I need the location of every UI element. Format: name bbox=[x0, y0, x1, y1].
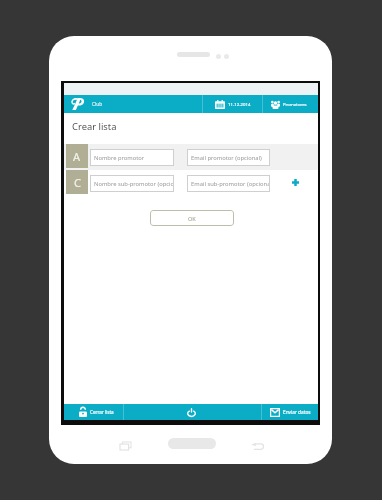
button[interactable]: C bbox=[66, 170, 88, 194]
staticText: Email promotor (opcional) bbox=[191, 154, 262, 162]
staticText: Crear lista bbox=[72, 120, 117, 133]
staticText: Promotores bbox=[283, 101, 307, 107]
button[interactable]: Club bbox=[64, 95, 202, 113]
button[interactable]: Recent apps bbox=[114, 434, 137, 457]
staticText: Enviar datos bbox=[283, 409, 311, 415]
staticText: C bbox=[74, 175, 81, 190]
button[interactable]: Add sub-promoter bbox=[289, 176, 302, 189]
staticText: OK bbox=[188, 215, 196, 222]
button[interactable]: Cerrar lista bbox=[64, 404, 123, 420]
button[interactable]: Email sub-promotor (opcional) bbox=[187, 175, 270, 192]
button[interactable]: Promotores bbox=[263, 95, 318, 113]
button[interactable]: Nombre promotor bbox=[90, 149, 174, 166]
staticText: 11-12-2014 bbox=[228, 101, 251, 107]
button[interactable]: Enviar datos bbox=[262, 404, 318, 420]
button[interactable]: Home bbox=[168, 438, 216, 449]
button[interactable]: OK bbox=[150, 210, 234, 226]
staticText: Nombre promotor bbox=[94, 154, 145, 162]
button[interactable]: Nombre sub-promotor (opcional) bbox=[90, 175, 174, 192]
button[interactable]: Power bbox=[124, 404, 261, 420]
staticText: Email sub-promotor (opcional) bbox=[191, 180, 269, 188]
button[interactable]: 11-12-2014 bbox=[203, 95, 262, 113]
button[interactable]: Email promotor (opcional) bbox=[187, 149, 270, 166]
button[interactable]: A bbox=[66, 144, 88, 168]
button[interactable]: Back bbox=[245, 434, 270, 459]
staticText: A bbox=[73, 149, 81, 164]
staticText: Cerrar lista bbox=[90, 409, 114, 415]
staticText: Nombre sub-promotor (opcional) bbox=[94, 180, 173, 188]
staticText: Club bbox=[92, 101, 103, 108]
